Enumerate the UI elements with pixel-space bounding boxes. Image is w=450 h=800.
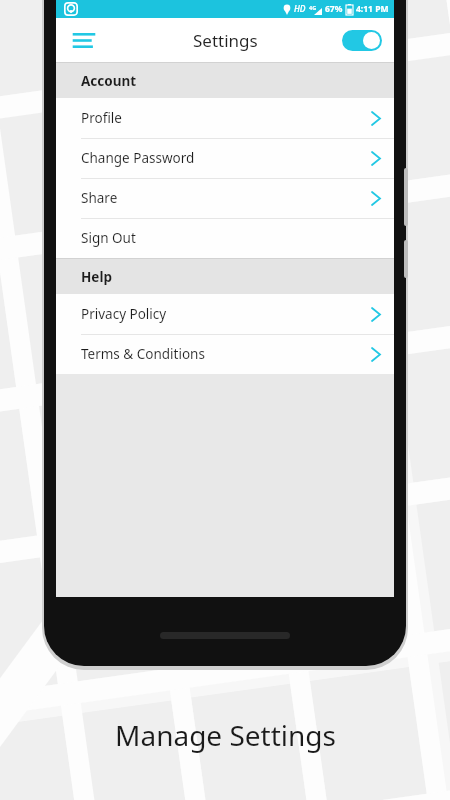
button[interactable]: Profile: [56, 98, 394, 138]
button[interactable]: Terms & Conditions: [56, 334, 394, 374]
staticText: HD: [294, 3, 306, 15]
staticText: 67%: [325, 3, 343, 15]
button[interactable]: Share: [56, 178, 394, 218]
staticText: Sign Out: [81, 229, 136, 247]
staticText: Settings: [193, 29, 258, 52]
staticText: Account: [81, 72, 137, 90]
staticText: Change Password: [81, 149, 195, 167]
button[interactable]: Privacy Policy: [56, 294, 394, 334]
staticText: Profile: [81, 109, 122, 127]
staticText: 4:11 PM: [356, 3, 389, 15]
button[interactable]: Open navigation menu: [66, 22, 102, 58]
staticText: Privacy Policy: [81, 305, 167, 323]
staticText: 4G: [309, 4, 317, 11]
button[interactable]: Change Password: [56, 138, 394, 178]
staticText: Help: [81, 268, 112, 286]
button[interactable]: Settings toggle, on: [340, 25, 384, 55]
button[interactable]: Sign Out: [56, 218, 394, 258]
staticText: Share: [81, 189, 118, 207]
staticText: Manage Settings: [115, 716, 336, 754]
staticText: Terms & Conditions: [81, 345, 205, 363]
